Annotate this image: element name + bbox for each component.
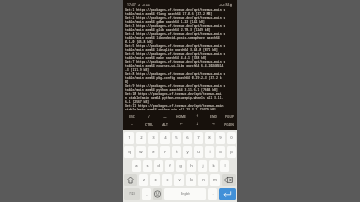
button[interactable]: w <box>136 146 146 158</box>
button[interactable]: x <box>150 174 160 186</box>
staticText: B] <box>125 80 129 84</box>
button[interactable]: ?123 <box>124 188 140 200</box>
staticText: Get:1 https://packages-cf.termux.dev/apt… <box>125 8 226 12</box>
button[interactable]: s <box>143 160 152 172</box>
button[interactable]: 4 <box>160 132 170 144</box>
staticText: ?123 <box>129 192 135 196</box>
staticText: n <box>202 177 205 183</box>
staticText: ← <box>180 122 183 126</box>
button[interactable]: Emoji <box>153 188 162 200</box>
staticText: Get:9 https://packages-cf.termux.dev/apt… <box>125 84 226 88</box>
staticText: h <box>190 163 193 169</box>
button[interactable]: d <box>154 160 163 172</box>
staticText: English <box>181 192 190 196</box>
button[interactable]: f <box>165 160 174 172</box>
button[interactable]: h <box>187 160 196 172</box>
button[interactable]: ↓ <box>189 120 205 128</box>
button[interactable]: r <box>160 146 170 158</box>
staticText: , <box>146 191 148 197</box>
staticText: table/main arm64 libsqlite aarch64 3.44.… <box>125 48 218 52</box>
button[interactable]: k <box>209 160 218 172</box>
button[interactable]: e <box>148 146 158 158</box>
button[interactable]: Backspace <box>222 174 236 186</box>
button[interactable]: 7 <box>194 132 203 144</box>
staticText: i <box>209 149 211 155</box>
button[interactable]: p <box>227 146 236 158</box>
button[interactable]: / <box>140 112 157 120</box>
button[interactable]: 6 <box>183 132 192 144</box>
button[interactable]: q <box>124 146 134 158</box>
button[interactable]: 8 <box>205 132 214 144</box>
button[interactable]: HOME <box>173 112 189 120</box>
staticText: a <box>135 163 138 169</box>
button[interactable]: ~ <box>123 120 140 128</box>
staticText: 7 <box>197 135 200 141</box>
button[interactable]: English <box>164 188 206 200</box>
button[interactable]: CTRL <box>140 120 157 128</box>
staticText: PGUP <box>225 114 234 118</box>
button[interactable]: 5 <box>172 132 181 144</box>
staticText: ~ <box>131 122 133 126</box>
button[interactable]: a <box>132 160 141 172</box>
button[interactable]: ← <box>173 120 189 128</box>
button[interactable]: z <box>139 174 148 186</box>
button[interactable]: ALT <box>157 120 173 128</box>
button[interactable]: 9 <box>216 132 225 144</box>
button[interactable]: o <box>216 146 225 158</box>
button[interactable]: 0 <box>227 132 236 144</box>
staticText: → <box>212 122 215 126</box>
button[interactable]: ESC <box>123 112 140 120</box>
button[interactable]: y <box>183 146 192 158</box>
staticText: t <box>176 149 178 155</box>
staticText: table/main arm64 pkg-config aarch64 0.29… <box>125 76 222 80</box>
staticText: 17:47 ⊿ ⊿ ⚹⚹ <box>127 2 150 7</box>
button[interactable]: 2 <box>136 132 146 144</box>
staticText: v <box>178 177 181 183</box>
staticText: u <box>197 149 200 155</box>
button[interactable]: m <box>210 174 220 186</box>
button[interactable]: l <box>220 160 229 172</box>
button[interactable]: v <box>174 174 184 186</box>
staticText: k <box>212 163 215 169</box>
staticText: x <box>154 177 157 183</box>
staticText: 9 <box>219 135 222 141</box>
button[interactable]: ↑ <box>189 112 205 120</box>
button[interactable]: Enter <box>219 188 236 200</box>
button[interactable]: n <box>198 174 208 186</box>
staticText: / <box>148 114 150 118</box>
staticText: ⊿⊿ 84 ▮ <box>219 2 233 7</box>
staticText: ESC <box>129 114 135 118</box>
button[interactable]: → <box>205 120 221 128</box>
button[interactable]: b <box>186 174 196 186</box>
staticText: 6 <box>186 135 189 141</box>
button[interactable]: Shift <box>124 174 137 186</box>
staticText: b <box>190 177 193 183</box>
button[interactable]: PGUP <box>221 112 237 120</box>
button[interactable]: 1 <box>124 132 134 144</box>
button[interactable]: — <box>157 112 173 120</box>
button[interactable]: PGDN <box>221 120 237 128</box>
button[interactable]: END <box>205 112 221 120</box>
button[interactable]: t <box>172 146 181 158</box>
staticText: ↓ <box>196 122 199 126</box>
staticText: -3 [111.9 kB] <box>125 68 150 72</box>
staticText: f <box>169 163 171 169</box>
button[interactable]: 3 <box>148 132 158 144</box>
button[interactable]: g <box>176 160 185 172</box>
staticText: 2 <box>140 135 143 141</box>
staticText: table/main arm64 gdbm aarch64 1.23 [142 … <box>125 20 205 24</box>
staticText: 1 <box>128 135 131 141</box>
button[interactable]: j <box>198 160 207 172</box>
staticText: stable/main arm64 python-pip all 23.3.1 … <box>125 108 216 110</box>
staticText: 4 <box>164 135 167 141</box>
staticText: END <box>210 114 217 118</box>
staticText: Get:3 https://packages-cf.termux.dev/apt… <box>125 24 226 28</box>
button[interactable]: i <box>205 146 214 158</box>
button[interactable]: c <box>162 174 172 186</box>
staticText: l <box>224 163 226 169</box>
button[interactable]: u <box>194 146 203 158</box>
staticText: s <box>146 163 149 169</box>
button[interactable]: , <box>142 188 151 200</box>
staticText: r <box>164 149 166 155</box>
